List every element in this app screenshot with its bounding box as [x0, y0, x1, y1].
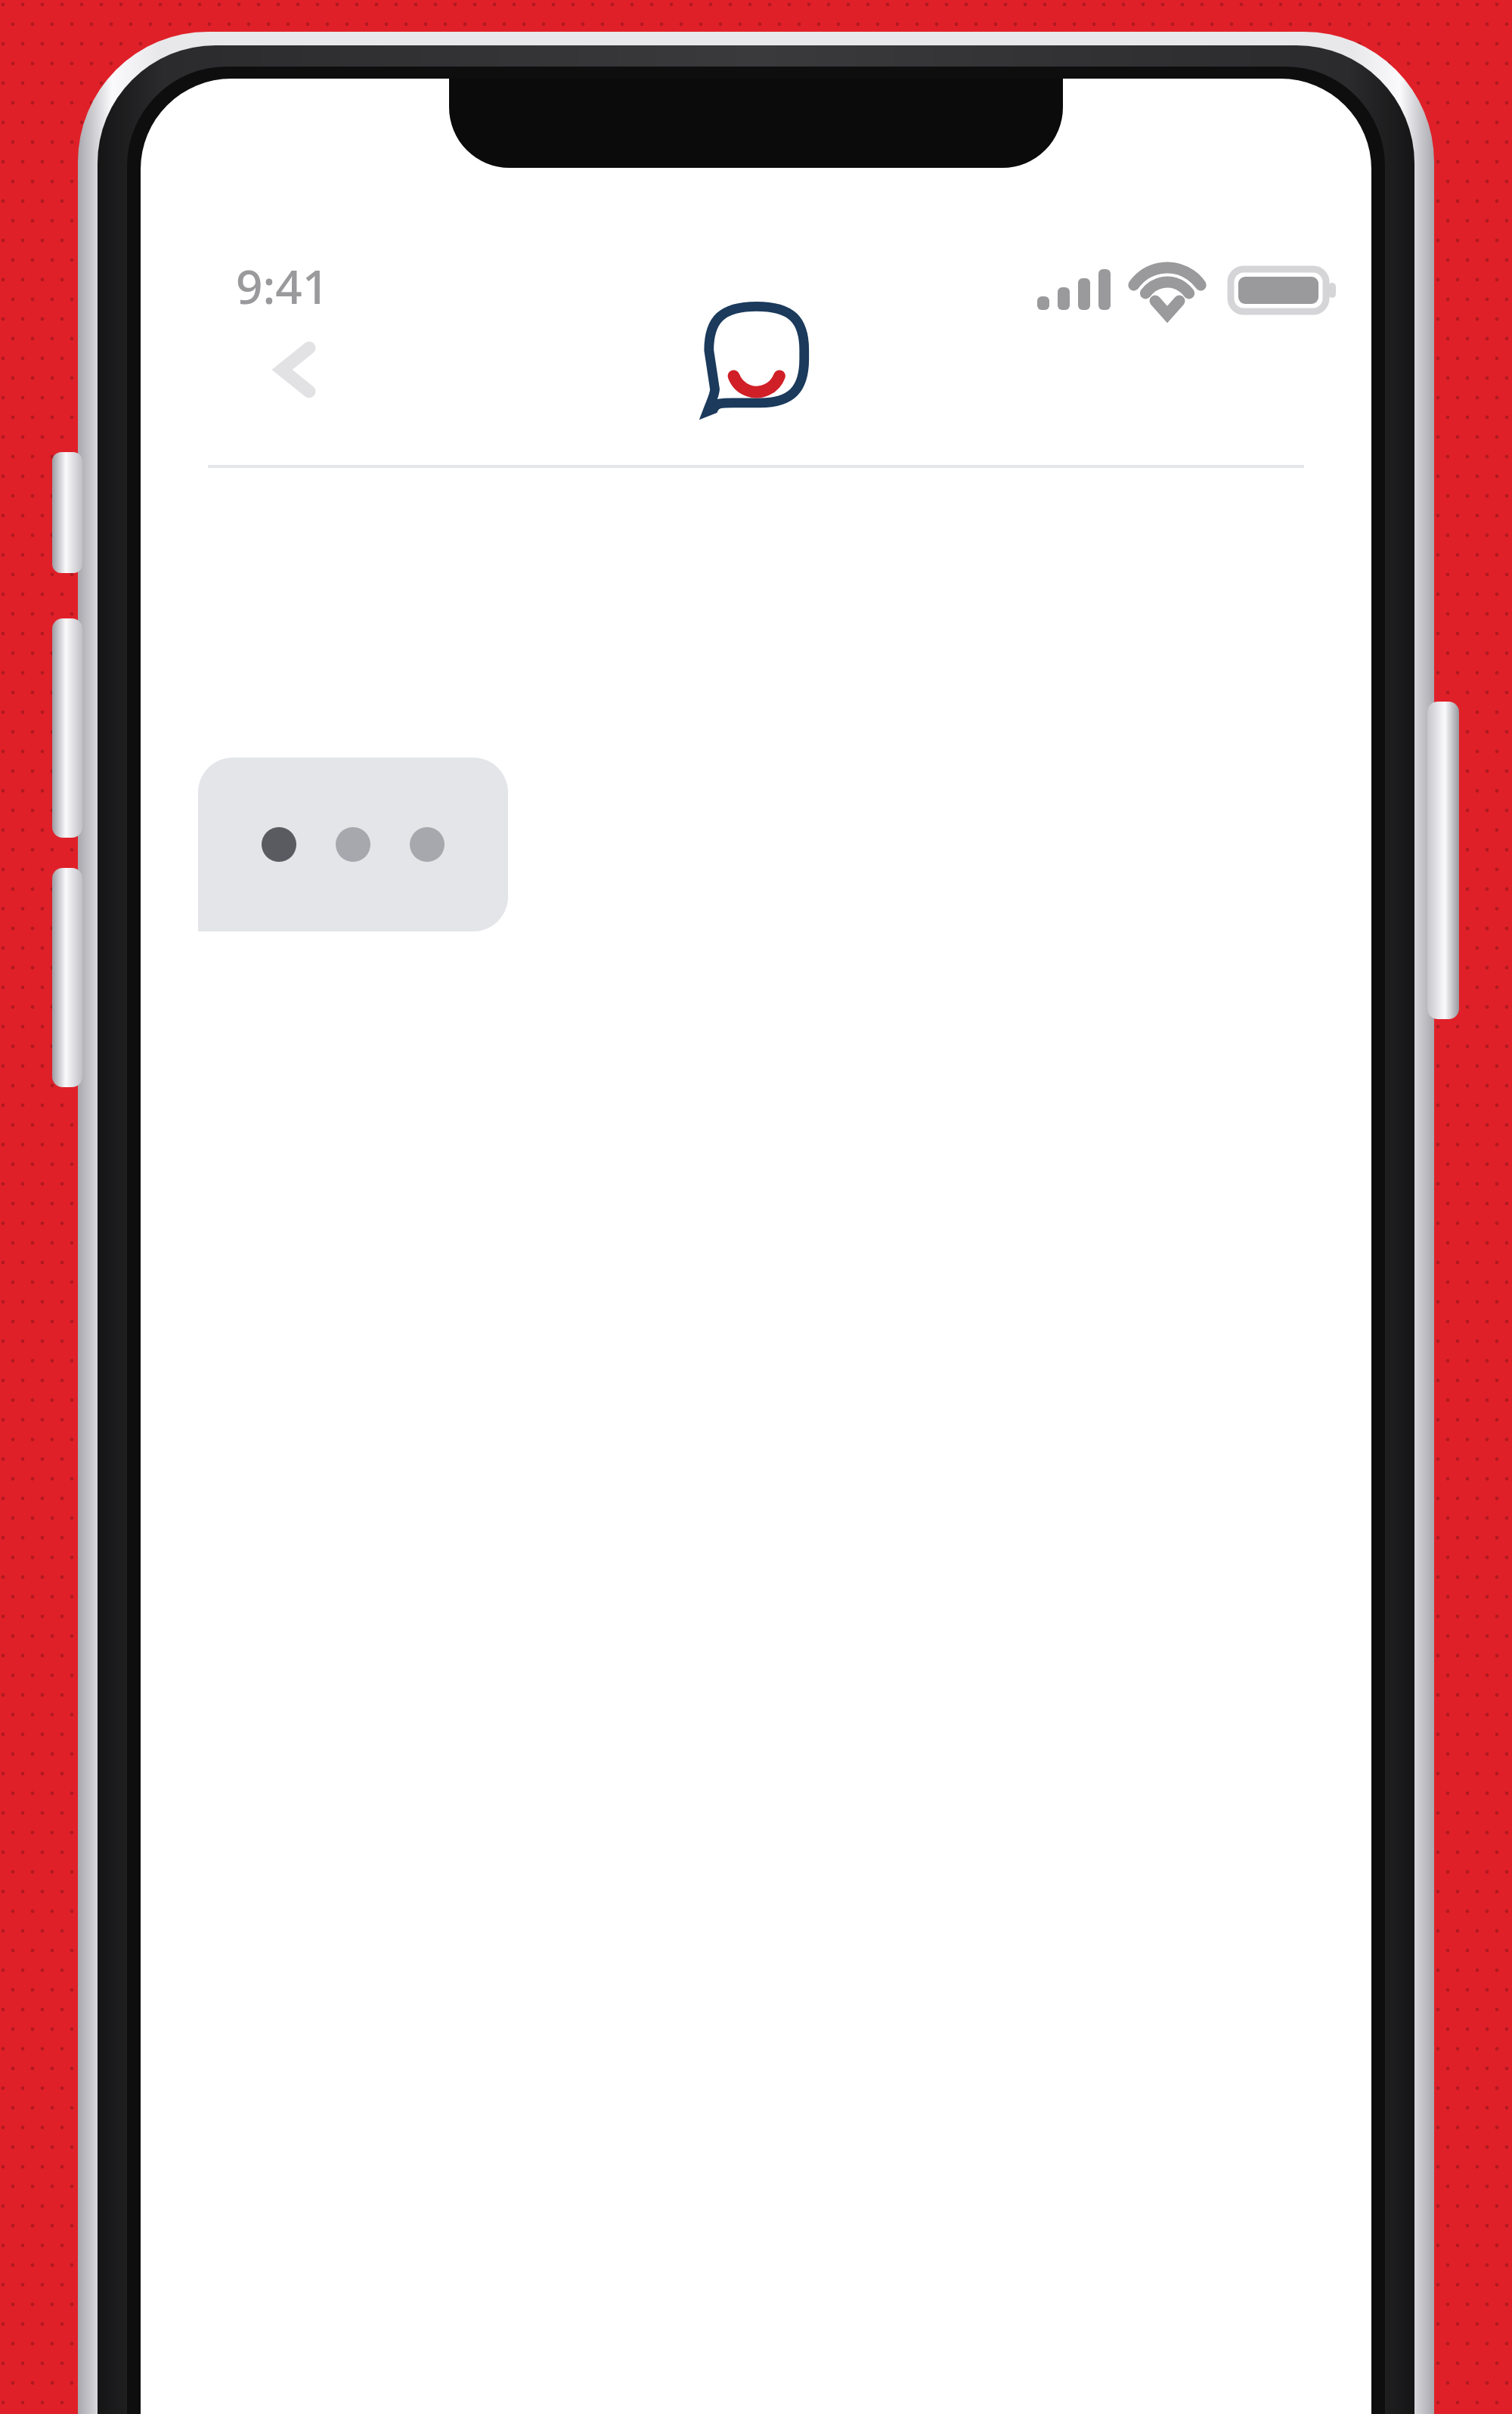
- button[interactable]: Back: [231, 305, 360, 434]
- button[interactable]: Typing: [198, 758, 508, 931]
- staticText: 9:41: [236, 254, 330, 318]
- button[interactable]: Home: [680, 281, 832, 432]
